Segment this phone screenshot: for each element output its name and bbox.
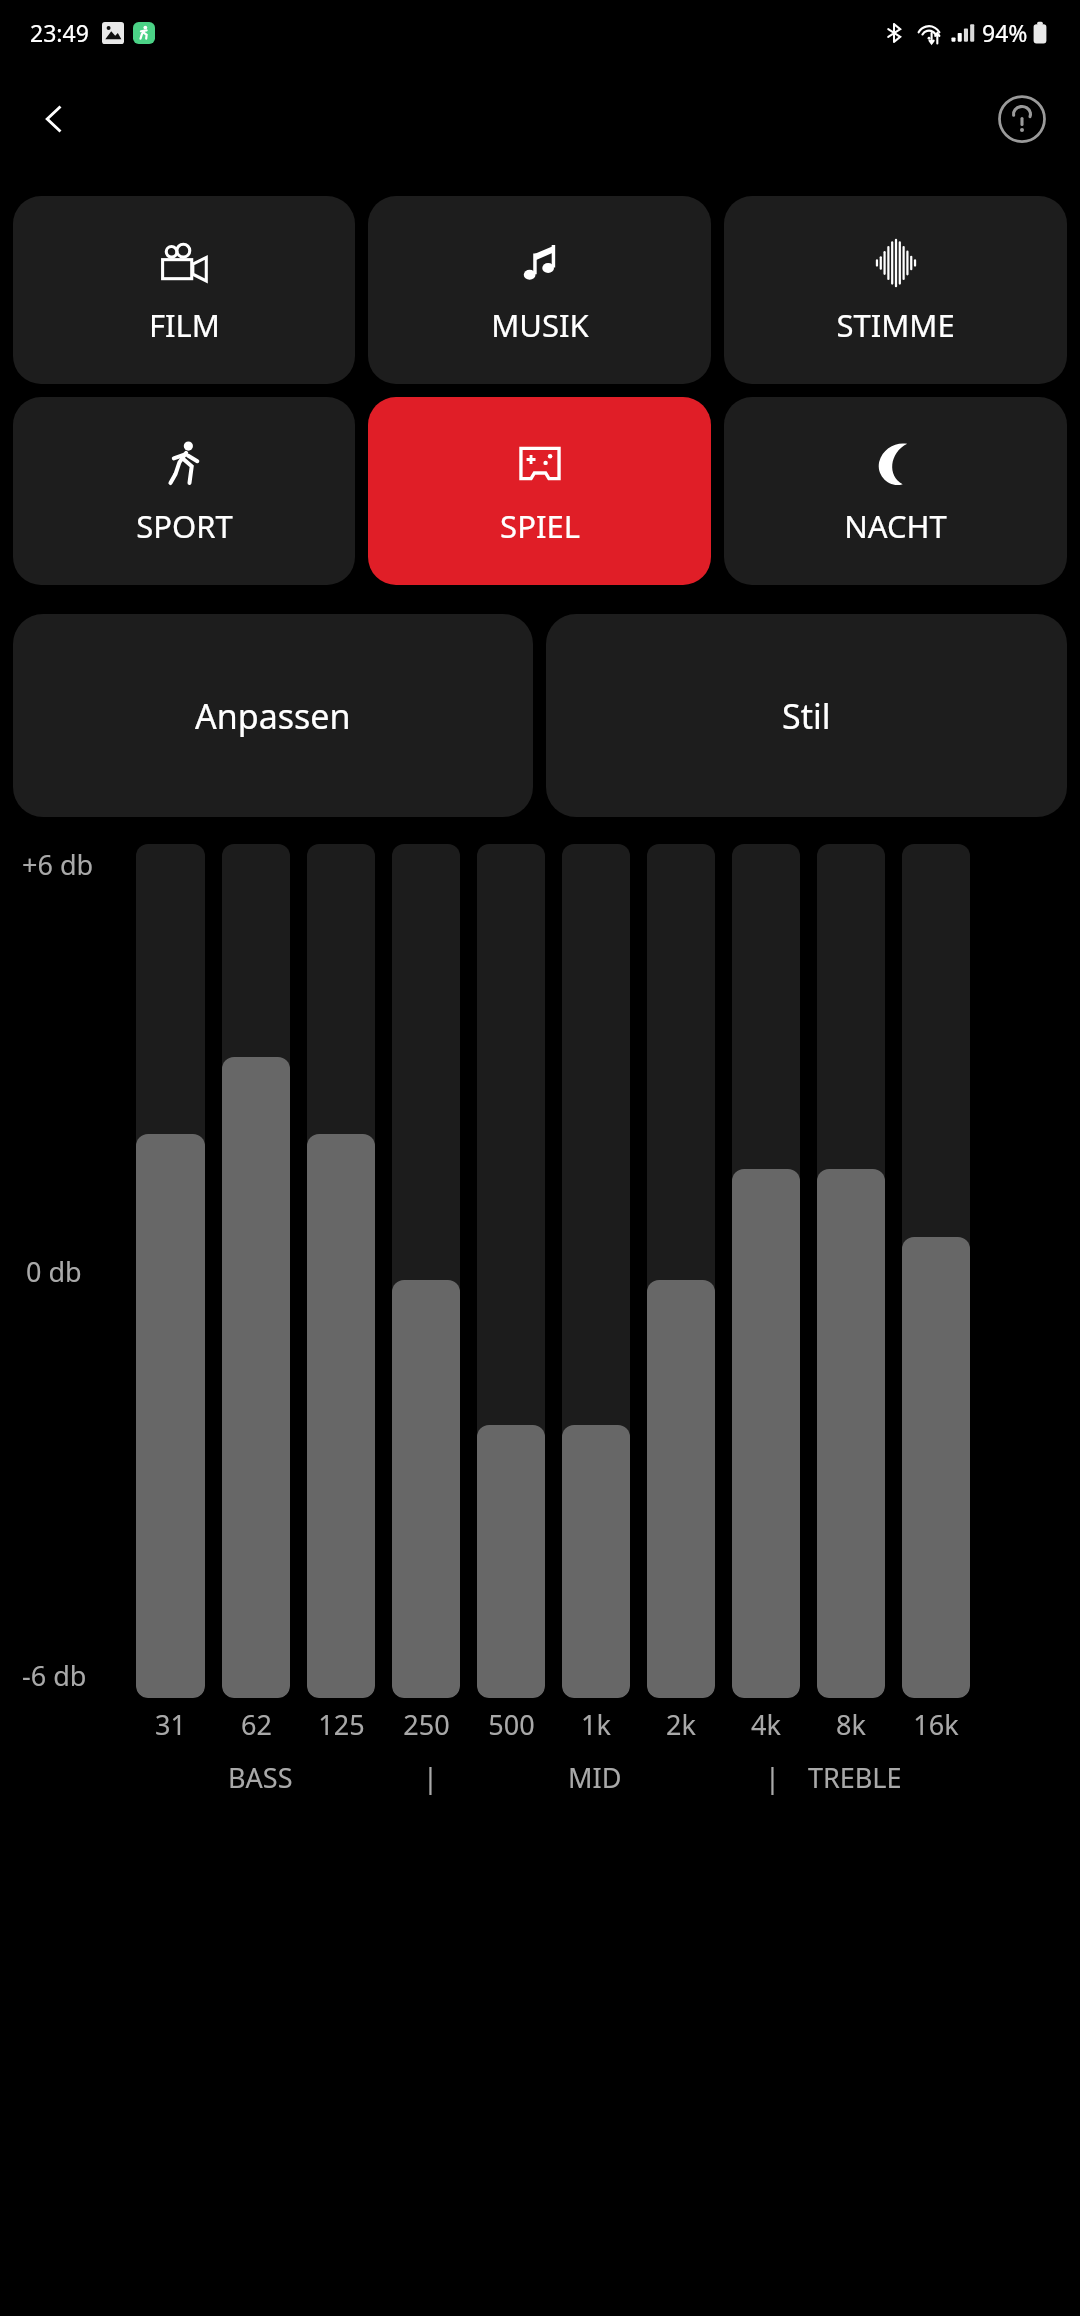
button[interactable]: FILM xyxy=(13,196,355,384)
staticText: 1k xyxy=(581,1706,611,1743)
button[interactable]: NACHT xyxy=(724,397,1067,585)
staticText: | xyxy=(765,1759,780,1796)
staticText: 0 db xyxy=(26,1253,82,1290)
staticText: -6 db xyxy=(22,1657,87,1694)
button[interactable]: Band 62 xyxy=(222,844,290,1698)
staticText: +6 db xyxy=(22,846,94,883)
staticText: 31 xyxy=(155,1706,186,1743)
button[interactable]: Band 31 xyxy=(136,844,205,1698)
staticText: 8k xyxy=(836,1706,866,1743)
staticText: STIMME xyxy=(836,304,955,346)
staticText: TREBLE xyxy=(808,1759,902,1796)
staticText: 16k xyxy=(913,1706,959,1743)
staticText: Stil xyxy=(782,693,831,739)
button[interactable]: Anpassen xyxy=(13,614,533,817)
staticText: NACHT xyxy=(844,505,947,547)
button[interactable]: Band 2k xyxy=(647,844,715,1698)
button[interactable]: Band 4k xyxy=(732,844,800,1698)
staticText: FILM xyxy=(149,304,220,346)
staticText: SPIEL xyxy=(500,505,580,547)
staticText: 62 xyxy=(241,1706,272,1743)
button[interactable]: SPIEL xyxy=(368,397,711,585)
button[interactable]: Back xyxy=(18,83,90,155)
staticText: 94% xyxy=(982,17,1028,48)
staticText: 4k xyxy=(751,1706,781,1743)
button[interactable]: Band 8k xyxy=(817,844,885,1698)
button[interactable]: Help xyxy=(986,83,1058,155)
button[interactable]: SPORT xyxy=(13,397,355,585)
staticText: 23:49 xyxy=(30,17,89,48)
staticText: SPORT xyxy=(136,505,233,547)
staticText: MID xyxy=(568,1759,622,1796)
staticText: BASS xyxy=(228,1759,293,1796)
button[interactable]: Band 1k xyxy=(562,844,630,1698)
staticText: MUSIK xyxy=(491,304,589,346)
staticText: 500 xyxy=(488,1706,535,1743)
staticText: 250 xyxy=(403,1706,450,1743)
staticText: 2k xyxy=(666,1706,696,1743)
button[interactable]: Band 500 xyxy=(477,844,545,1698)
button[interactable]: Stil xyxy=(546,614,1067,817)
staticText: | xyxy=(423,1759,438,1796)
button[interactable]: Band 250 xyxy=(392,844,460,1698)
button[interactable]: MUSIK xyxy=(368,196,711,384)
staticText: 125 xyxy=(318,1706,365,1743)
button[interactable]: STIMME xyxy=(724,196,1067,384)
button[interactable]: Band 16k xyxy=(902,844,970,1698)
button[interactable]: Band 125 xyxy=(307,844,375,1698)
staticText: Anpassen xyxy=(195,693,351,739)
